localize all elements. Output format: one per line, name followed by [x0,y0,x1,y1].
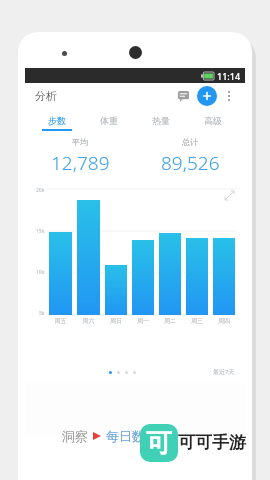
staticText: 周五 [49,317,72,325]
staticText: 每日数据 [106,428,158,444]
staticText: 20k [36,187,45,194]
staticText: 12,789 [51,150,110,176]
staticText: 总计 [182,137,198,147]
staticText: 体重 [100,115,118,126]
staticText: 10k [36,269,45,276]
staticText: 周六 [77,317,100,325]
staticText: 89,526 [161,150,220,176]
staticText: 周二 [159,317,181,325]
staticText: 11:14 [217,70,241,82]
button[interactable] [105,265,127,315]
staticText: 步数 [48,115,66,126]
staticText: 周四 [213,317,235,325]
button[interactable] [132,240,154,315]
staticText: 15k [36,228,45,235]
staticText: 周一 [132,317,154,325]
button[interactable]: Add [197,86,217,106]
staticText: 分析 [35,89,57,103]
button[interactable]: Messages [173,86,193,106]
button[interactable]: 总计 [135,137,245,176]
button[interactable] [159,233,181,315]
staticText: 洞察 [62,428,88,444]
staticText: 可可手游 [178,432,246,453]
staticText: 热量 [152,115,170,126]
button[interactable]: 步数 [31,109,83,131]
button[interactable]: 热量 [135,109,187,131]
button[interactable]: Expand chart [221,187,237,203]
button[interactable]: 体重 [83,109,135,131]
staticText: 5k [39,310,45,317]
button[interactable] [213,238,235,315]
staticText: 周日 [105,317,127,325]
staticText: 高级 [204,115,222,126]
button[interactable] [49,232,72,315]
button[interactable]: 高级 [187,109,239,131]
button[interactable]: More options [220,87,238,105]
button[interactable]: 平均 [25,137,135,176]
staticText: 周三 [186,317,208,325]
button[interactable] [186,238,208,315]
staticText: 最近7天 [213,368,235,376]
staticText: 可 [146,427,172,460]
button[interactable] [77,200,100,315]
staticText: 平均 [72,137,88,147]
